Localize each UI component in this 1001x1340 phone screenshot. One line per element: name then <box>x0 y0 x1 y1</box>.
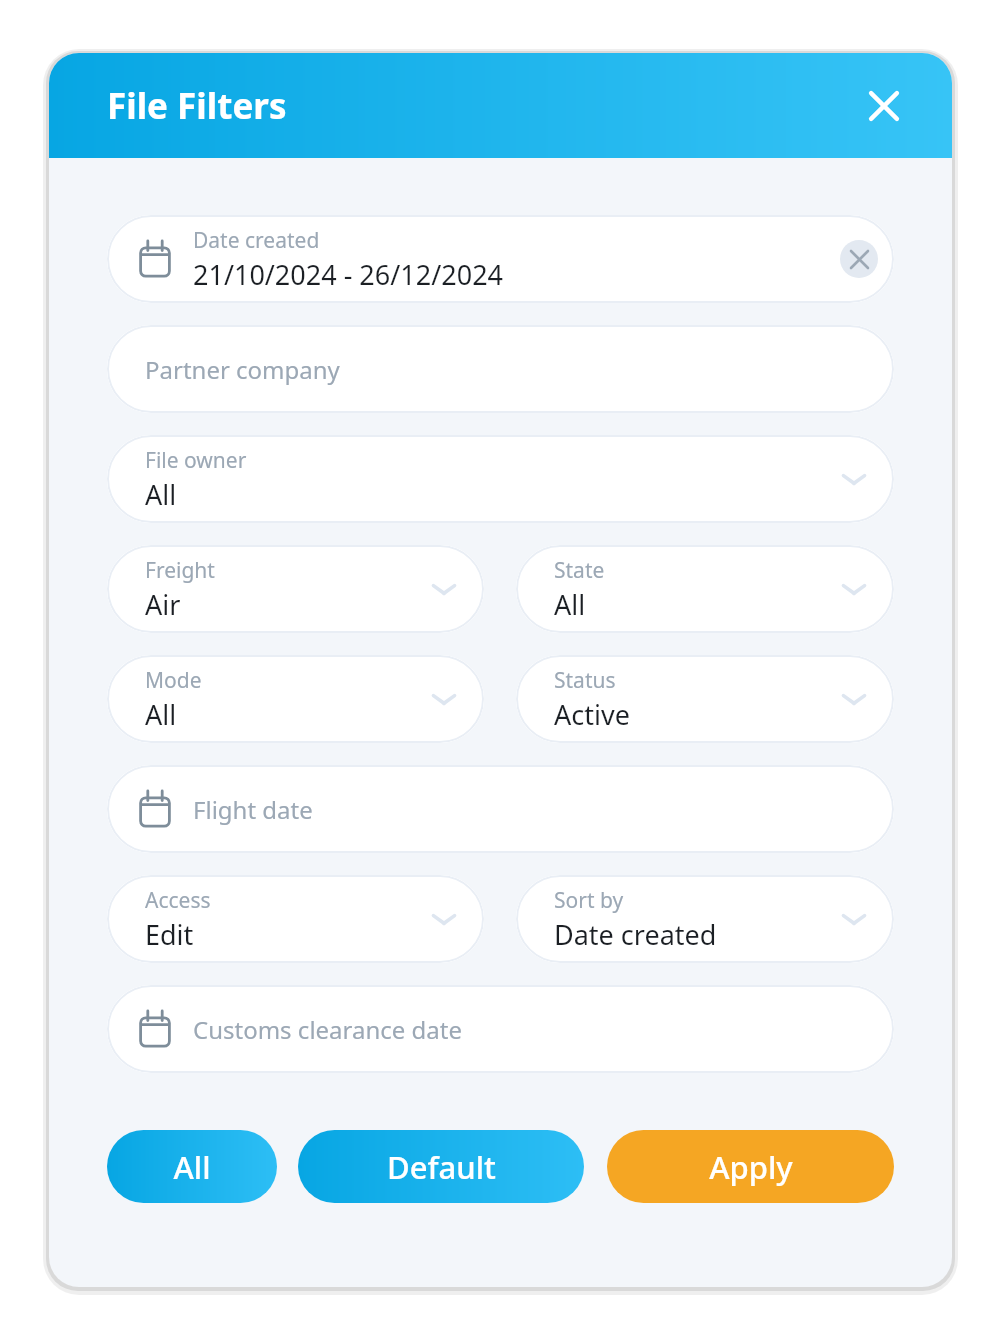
button[interactable]: Default <box>298 1130 584 1203</box>
staticText: Default <box>387 1146 496 1188</box>
button[interactable]: Freight <box>107 545 484 633</box>
staticText: Apply <box>709 1146 793 1188</box>
button[interactable]: Mode <box>107 655 484 743</box>
staticText: Active <box>554 696 630 733</box>
staticText: File owner <box>145 446 247 475</box>
staticText: Date created <box>193 226 320 255</box>
staticText: 21/10/2024 - 26/12/2024 <box>193 256 504 293</box>
staticText: All <box>554 586 586 623</box>
button[interactable]: Date created <box>107 215 894 303</box>
button[interactable]: Customs clearance date <box>107 985 894 1073</box>
button[interactable]: Close <box>856 78 912 134</box>
staticText: All <box>173 1146 211 1188</box>
staticText: All <box>145 696 177 733</box>
staticText: All <box>145 476 177 513</box>
staticText: Date created <box>554 916 717 953</box>
staticText: Status <box>554 666 616 695</box>
staticText: File Filters <box>107 82 287 130</box>
button[interactable]: Clear date created <box>836 236 882 282</box>
staticText: Sort by <box>554 886 624 915</box>
staticText: Flight date <box>193 793 313 826</box>
button[interactable]: All <box>107 1130 277 1203</box>
button[interactable]: Sort by <box>516 875 894 963</box>
staticText: Freight <box>145 556 215 585</box>
button[interactable]: Flight date <box>107 765 894 853</box>
button[interactable]: Access <box>107 875 484 963</box>
staticText: Partner company <box>145 353 340 386</box>
staticText: Edit <box>145 916 194 953</box>
staticText: Air <box>145 586 181 623</box>
staticText: Customs clearance date <box>193 1013 463 1046</box>
button[interactable]: Status <box>516 655 894 743</box>
button[interactable]: Partner company <box>107 325 894 413</box>
staticText: State <box>554 556 605 585</box>
staticText: Access <box>145 886 211 915</box>
button[interactable]: Apply <box>607 1130 894 1203</box>
staticText: Mode <box>145 666 202 695</box>
button[interactable]: State <box>516 545 894 633</box>
button[interactable]: File owner <box>107 435 894 523</box>
